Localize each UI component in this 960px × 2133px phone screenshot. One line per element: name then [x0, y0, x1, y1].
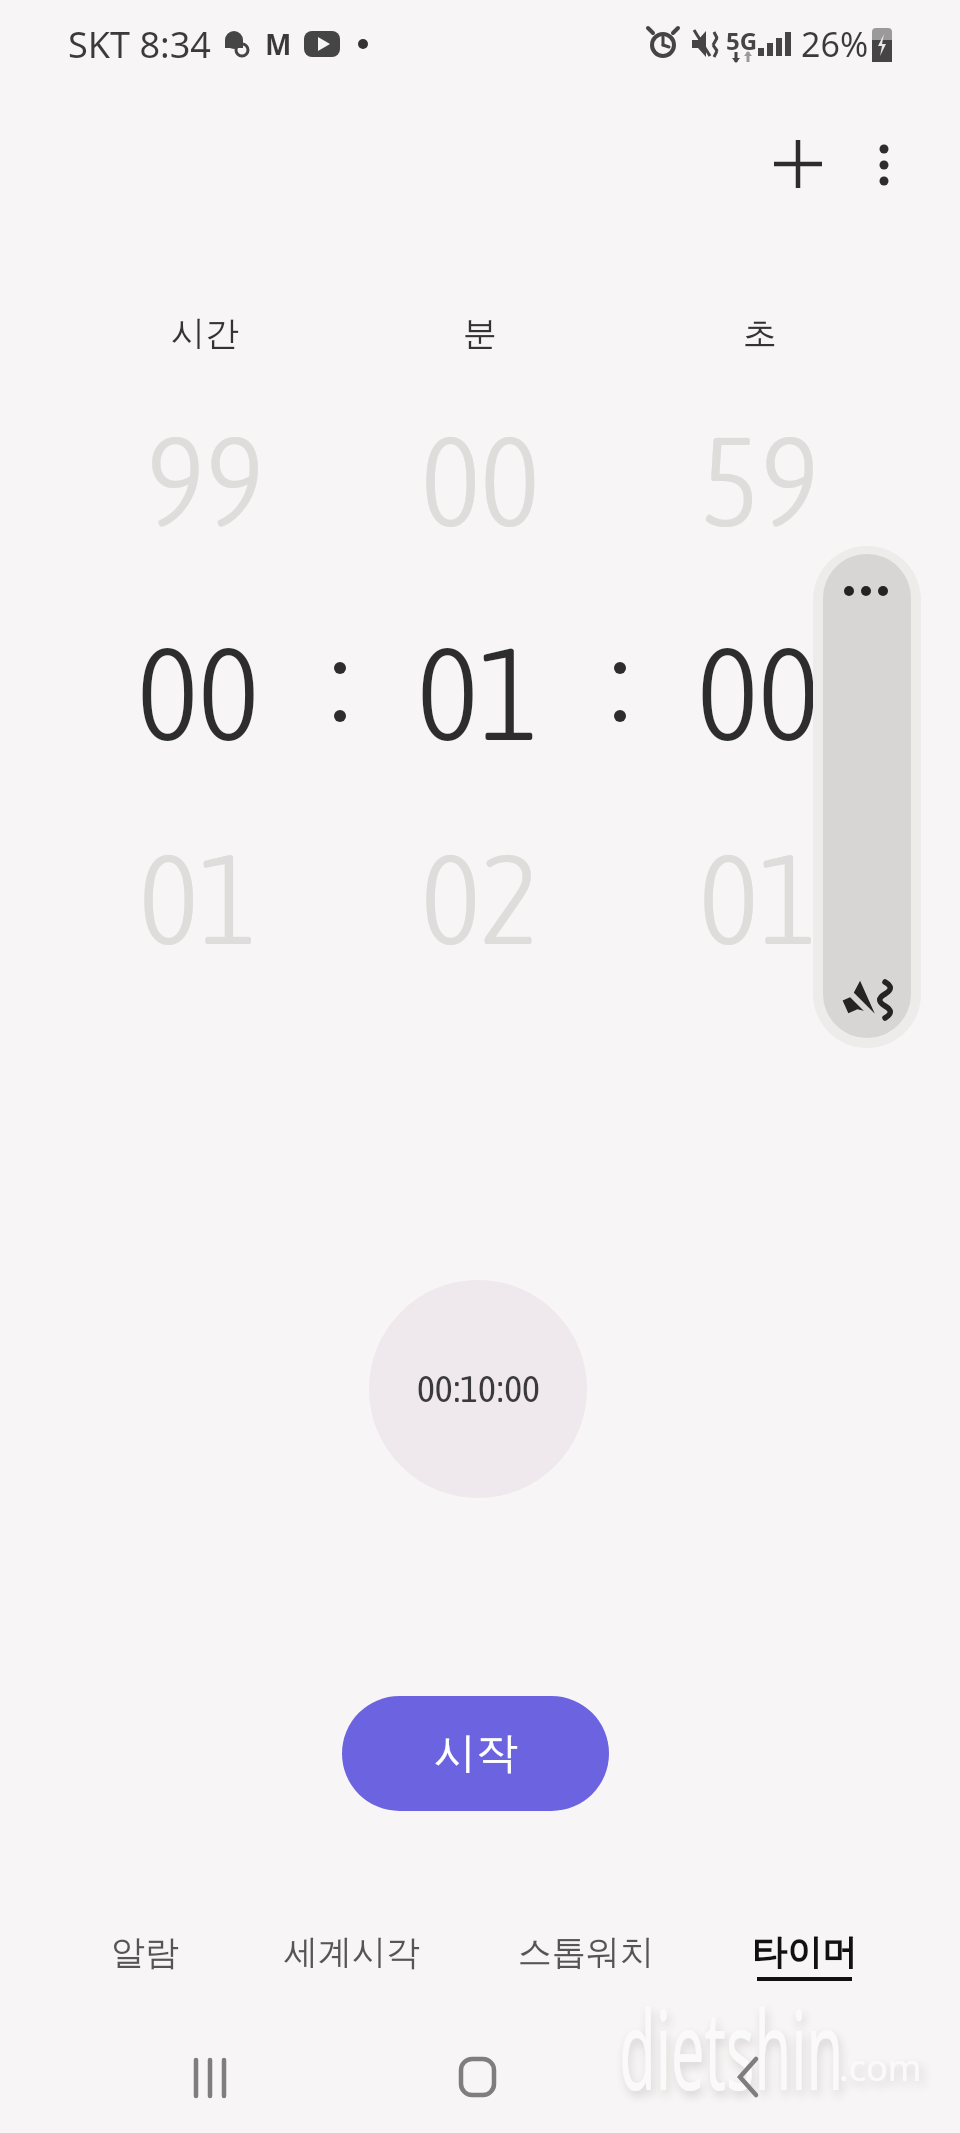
button[interactable]	[758, 124, 838, 204]
staticText: .com	[839, 2043, 922, 2092]
staticText: 00	[697, 619, 820, 768]
staticText: 타이머	[752, 1930, 857, 1974]
button[interactable]	[430, 2030, 525, 2125]
staticText: 알람	[111, 1931, 179, 1974]
button[interactable]: 01	[338, 588, 618, 798]
staticText: 초	[743, 312, 777, 355]
staticText: 시작	[434, 1727, 518, 1780]
staticText: M	[265, 25, 292, 63]
staticText: 26%	[801, 21, 869, 67]
button[interactable]: 시작	[342, 1696, 609, 1811]
staticText: dietshin	[619, 1972, 843, 2122]
button[interactable]	[823, 554, 911, 1038]
button[interactable]: 타이머	[724, 1917, 884, 1987]
staticText: 01	[417, 619, 540, 768]
staticText: 5G	[726, 24, 758, 57]
staticText: 스톱워치	[518, 1931, 654, 1974]
button[interactable]	[854, 124, 914, 204]
staticText: 세계시각	[284, 1931, 420, 1974]
staticText: 01	[699, 826, 818, 970]
staticText: 00	[137, 619, 260, 768]
staticText: 99	[146, 408, 265, 552]
staticText: 분	[463, 312, 497, 355]
button[interactable]	[160, 2030, 255, 2125]
staticText: SKT 8:34	[68, 20, 211, 69]
staticText: 01	[139, 826, 258, 970]
button[interactable]: 00:10:00	[369, 1280, 587, 1498]
staticText: 00:10:00	[417, 1367, 540, 1411]
button[interactable]: 00	[618, 588, 898, 798]
staticText: 시간	[171, 312, 239, 355]
staticText: 59	[701, 408, 820, 552]
staticText: 02	[421, 826, 540, 970]
button[interactable]: 알람	[65, 1917, 225, 1987]
staticText: 00	[421, 408, 540, 552]
button[interactable]: 세계시각	[242, 1917, 462, 1987]
button[interactable]: 00	[58, 588, 338, 798]
button[interactable]: 스톱워치	[476, 1917, 696, 1987]
button[interactable]	[700, 2030, 795, 2125]
